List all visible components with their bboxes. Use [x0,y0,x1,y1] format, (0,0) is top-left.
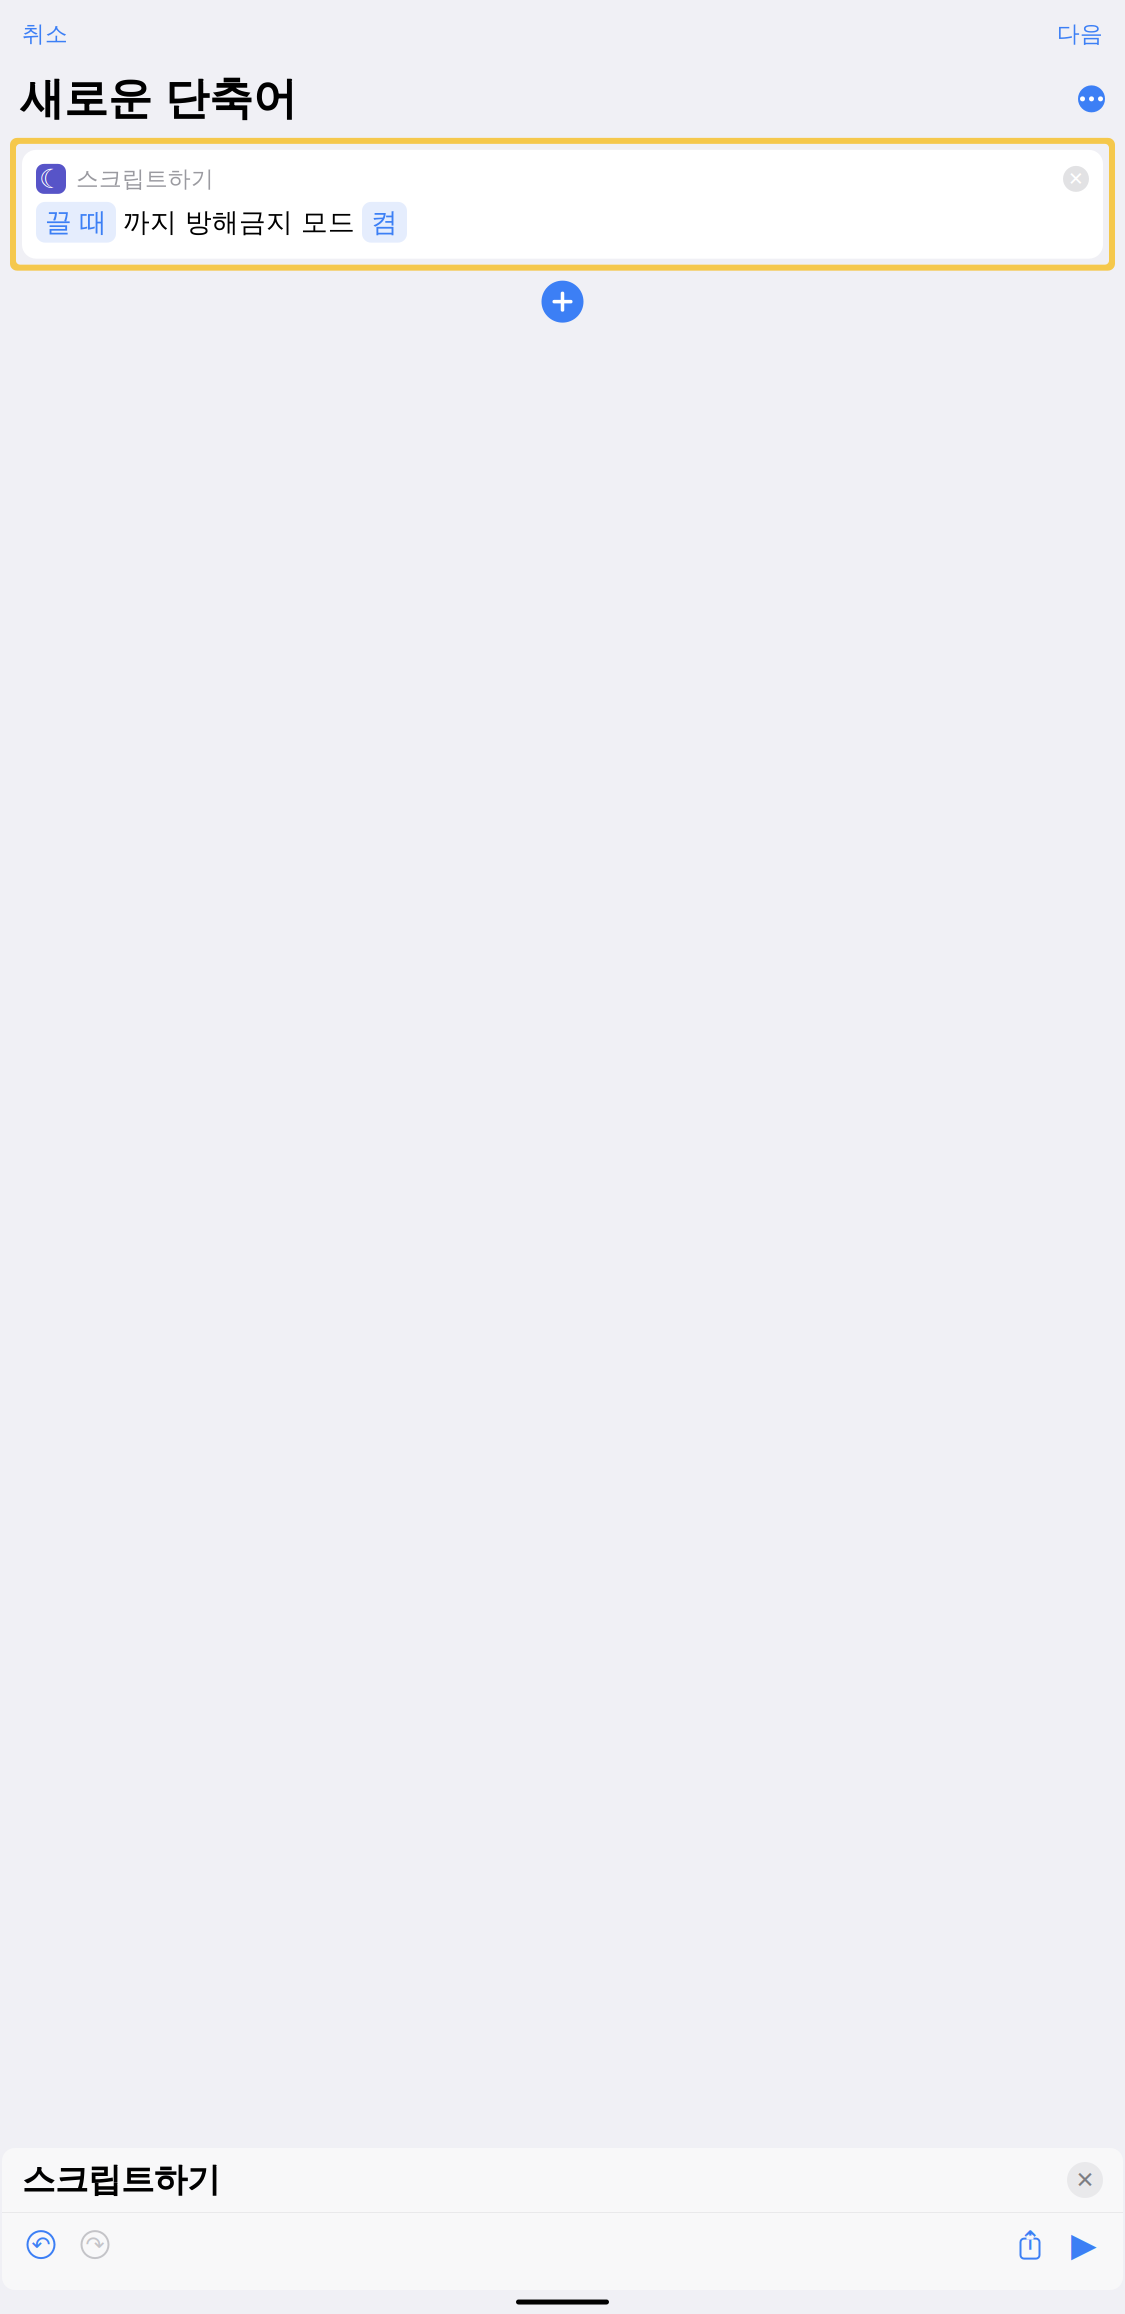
staticText: 취소 [22,20,68,48]
button[interactable]: Close [1067,2162,1103,2198]
button[interactable]: Share [1003,2223,1057,2267]
staticText: ✕ [1075,2167,1094,2193]
button[interactable]: More options [1078,85,1105,112]
staticText: 스크립트하기 [76,165,214,193]
button[interactable]: Redo [68,2223,122,2267]
button[interactable]: 끌 때 [36,202,116,243]
button[interactable]: 켬 [362,202,407,243]
staticText: ↶ [31,2232,50,2257]
staticText: ☾ [39,164,63,194]
button[interactable]: Add action [541,281,583,323]
staticText: ▶ [1071,2226,1097,2263]
button[interactable]: 취소 [18,12,72,56]
staticText: 끌 때 [45,206,107,239]
staticText: 다음 [1057,20,1103,48]
staticText: 새로운 단축어 [20,72,297,126]
staticText: 켬 [371,206,398,239]
staticText: ↑ [1019,2225,1041,2256]
staticText: ↷ [85,2232,104,2257]
staticText: ✕ [1068,168,1084,189]
staticText: 까지 방해금지 모드 [123,206,355,239]
button[interactable]: Undo [14,2223,68,2267]
button[interactable]: Run [1057,2223,1111,2267]
button[interactable]: 다음 [1053,12,1107,56]
staticText: 스크립트하기 [22,2159,220,2200]
button[interactable]: Remove action [1063,166,1089,192]
